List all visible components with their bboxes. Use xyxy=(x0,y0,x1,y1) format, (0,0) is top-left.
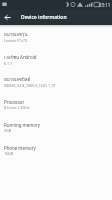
staticText: 6.1.1 xyxy=(4,61,13,66)
staticText: เวอร์ชัน Android xyxy=(4,54,37,61)
button[interactable]: Phone memory xyxy=(0,145,112,168)
staticText: หมายเลขรุ่น xyxy=(4,31,28,38)
button[interactable]: หมายเลขบิลด์ xyxy=(0,76,112,99)
button[interactable]: เวอร์ชัน Android xyxy=(0,54,112,77)
staticText: 8 Cores 1.5GHz xyxy=(4,105,30,110)
staticText: 16GB xyxy=(4,151,14,156)
button[interactable]: Back xyxy=(0,10,15,25)
staticText: 23:11 xyxy=(99,2,111,8)
button[interactable]: Processor xyxy=(0,99,112,122)
button[interactable]: Running memory xyxy=(0,122,112,145)
button[interactable]: หมายเลขรุ่น xyxy=(0,31,112,54)
staticText: Processor xyxy=(4,99,25,105)
staticText: Lenovo P1c72 xyxy=(4,38,28,43)
staticText: หมายเลขบิลด์ xyxy=(4,76,31,83)
staticText: Phone memory xyxy=(4,145,36,151)
staticText: Device information xyxy=(21,14,67,21)
staticText: VIBEUI_V2.8_1605.0_1641.1_ST xyxy=(4,83,56,88)
staticText: 2GB xyxy=(4,128,12,133)
staticText: Running memory xyxy=(4,122,40,128)
